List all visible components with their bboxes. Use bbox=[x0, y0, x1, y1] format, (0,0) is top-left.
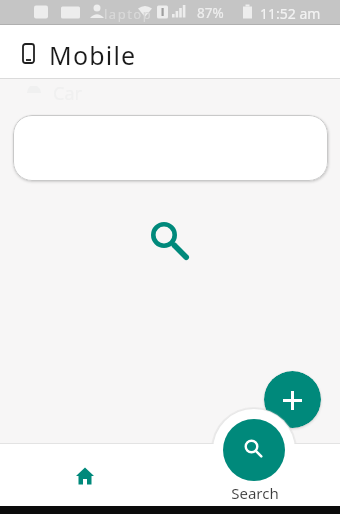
button[interactable] bbox=[264, 371, 321, 428]
staticText: laptop bbox=[104, 5, 153, 23]
button[interactable] bbox=[45, 451, 125, 501]
button[interactable] bbox=[223, 419, 285, 481]
staticText: Mobile bbox=[49, 38, 137, 72]
staticText: 11:52 am bbox=[260, 4, 321, 23]
staticText: 87% bbox=[197, 4, 224, 22]
staticText: Search bbox=[226, 483, 284, 503]
button[interactable] bbox=[13, 115, 328, 181]
